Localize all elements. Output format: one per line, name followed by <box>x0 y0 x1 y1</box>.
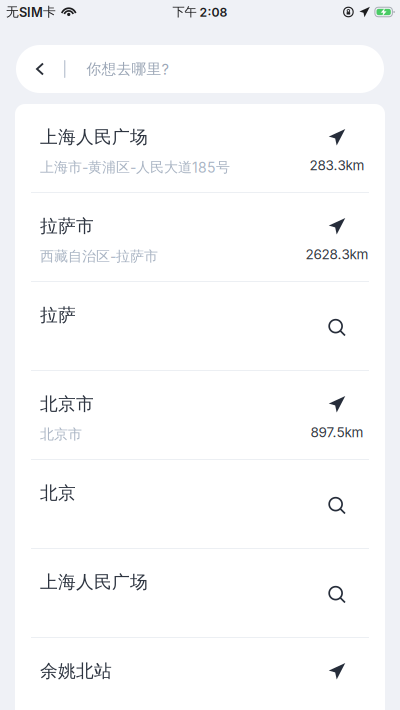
staticText: 283.3km <box>309 157 364 173</box>
staticText: 西藏自治区-拉萨市 <box>40 247 158 265</box>
button[interactable]: 上海人民广场 <box>15 549 385 637</box>
staticText: 2628.3km <box>305 246 368 262</box>
button[interactable]: 拉萨 <box>15 282 385 370</box>
staticText: 上海市-黄浦区-人民大道185号 <box>40 158 230 176</box>
staticText: 897.5km <box>310 424 363 440</box>
staticText: 拉萨 <box>40 304 76 326</box>
button[interactable]: 北京市 <box>15 371 385 459</box>
button[interactable]: 余姚北站 <box>15 638 385 710</box>
button[interactable]: 你想去哪里? <box>16 45 384 93</box>
button[interactable]: 拉萨市 <box>15 193 385 281</box>
staticText: 余姚北站 <box>40 660 112 682</box>
staticText: 拉萨市 <box>40 215 94 237</box>
staticText: 北京 <box>40 482 76 504</box>
staticText: 无SIM卡 <box>6 4 56 20</box>
staticText: 你想去哪里? <box>86 60 168 78</box>
staticText: 上海人民广场 <box>40 126 148 148</box>
staticText: 下午 2:08 <box>172 4 227 20</box>
button[interactable]: 上海人民广场 <box>15 104 385 192</box>
staticText: 北京市 <box>40 393 94 415</box>
button[interactable]: 北京 <box>15 460 385 548</box>
staticText: 北京市 <box>40 425 82 443</box>
staticText: 上海人民广场 <box>40 571 148 593</box>
